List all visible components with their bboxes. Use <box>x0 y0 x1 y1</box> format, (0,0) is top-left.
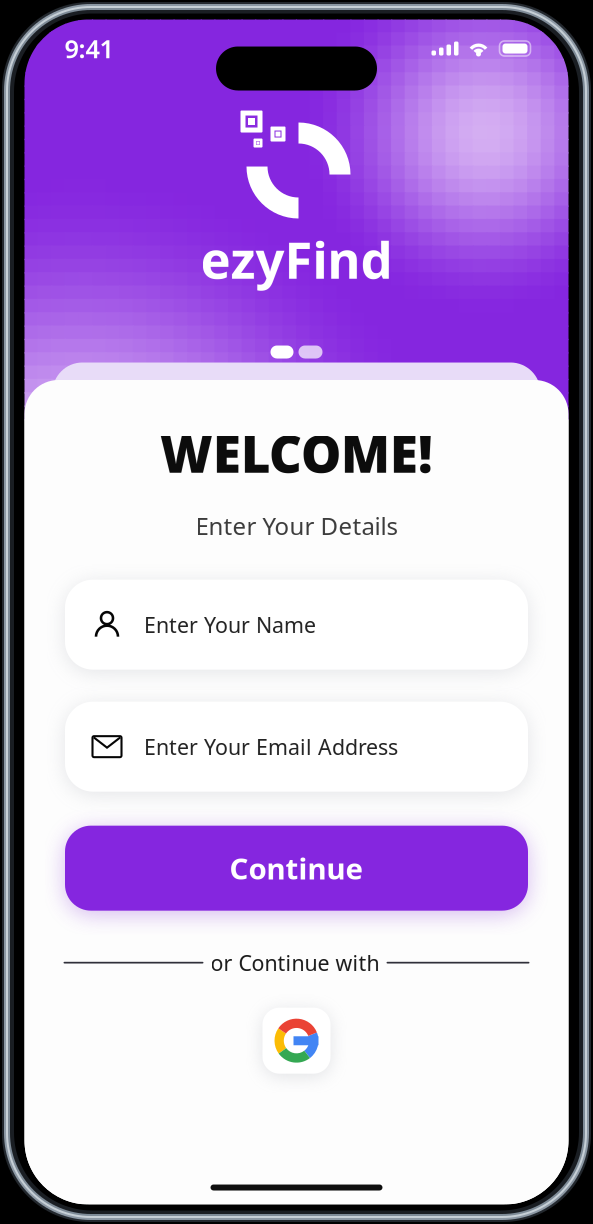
staticText: WELCOME! <box>160 419 433 487</box>
staticText: Enter Your Name <box>144 610 316 639</box>
staticText: ezyFind <box>200 225 392 293</box>
staticText: Enter Your Details <box>195 510 397 542</box>
staticText: or Continue with <box>210 948 379 977</box>
button[interactable]: Continue <box>65 826 528 911</box>
staticText: Enter Your Email Address <box>144 732 398 761</box>
staticText: 9:41 <box>64 32 113 65</box>
button[interactable]: Enter Your Email Address <box>65 702 528 792</box>
staticText: Continue <box>229 849 363 888</box>
button[interactable]: Enter Your Name <box>65 580 528 670</box>
button[interactable]: Continue with Google <box>262 1008 330 1074</box>
